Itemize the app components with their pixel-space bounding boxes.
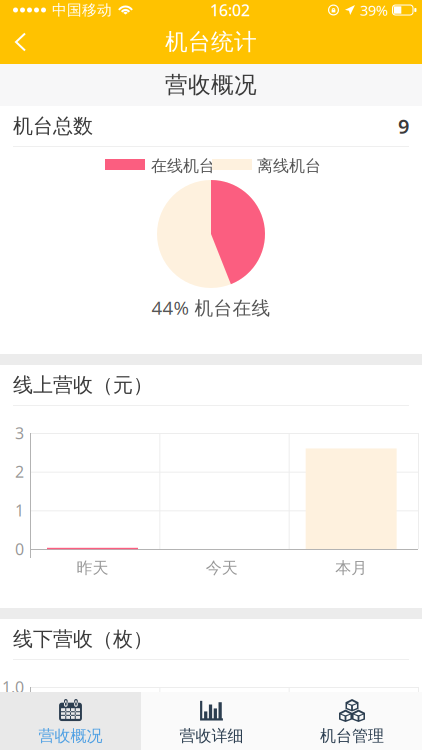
button[interactable]: 营收详细 — [141, 692, 282, 750]
staticText: 16:02 — [210, 0, 250, 21]
staticText: 39% — [360, 0, 388, 20]
staticText: 昨天 — [76, 558, 108, 578]
staticText: 3 — [15, 422, 24, 444]
staticText: 0 — [15, 538, 24, 560]
staticText: 44% 机台在线 — [151, 295, 270, 320]
staticText: 营收详细 — [179, 726, 243, 746]
staticText: 线上营收（元） — [13, 373, 153, 397]
staticText: 机台总数 — [13, 114, 93, 138]
staticText: 9 — [398, 113, 409, 139]
staticText: 2 — [15, 461, 24, 482]
staticText: 营收概况 — [165, 71, 257, 99]
staticText: 营收概况 — [38, 726, 102, 746]
staticText: 中国移动 — [52, 1, 112, 19]
staticText: 机台管理 — [320, 726, 384, 746]
staticText: 本月 — [335, 558, 367, 578]
staticText: 今天 — [206, 558, 238, 578]
button[interactable]: 营收概况 — [0, 692, 141, 750]
button[interactable]: 机台管理 — [282, 692, 422, 750]
button[interactable]: Back — [0, 20, 47, 64]
staticText: 在线机台 — [151, 156, 215, 176]
staticText: 线下营收（枚） — [13, 627, 153, 651]
staticText: 1 — [15, 500, 24, 521]
staticText: 机台统计 — [165, 28, 257, 56]
staticText: 离线机台 — [257, 156, 321, 176]
staticText: 1.0 — [2, 676, 24, 698]
